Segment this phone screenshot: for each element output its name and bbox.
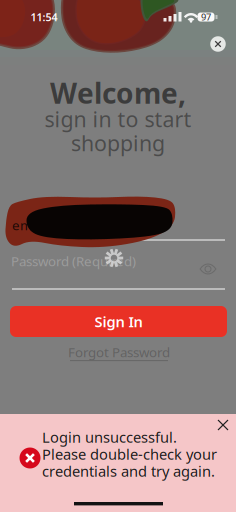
- staticText: credentials and try again.: [42, 461, 215, 481]
- staticText: Login unsuccessful.: [42, 427, 177, 447]
- staticText: Welcome,: [50, 74, 186, 112]
- staticText: 11:54: [30, 10, 57, 24]
- staticText: Please double-check your: [42, 444, 217, 464]
- staticText: Sign In: [94, 312, 142, 331]
- button[interactable]: Sign In: [10, 306, 227, 337]
- staticText: shopping: [71, 129, 165, 157]
- staticText: Password (Required): [11, 252, 136, 270]
- staticText: 97: [201, 11, 211, 23]
- staticText: Forgot Password: [68, 343, 170, 361]
- button[interactable]: Dismiss: [208, 410, 236, 440]
- button[interactable]: Password (Required): [11, 249, 216, 273]
- staticText: em: [12, 216, 32, 234]
- staticText: sign in to start: [44, 105, 191, 133]
- button[interactable]: Forgot Password: [39, 343, 199, 367]
- button[interactable]: Show password: [194, 257, 222, 281]
- button[interactable]: Close: [203, 29, 233, 59]
